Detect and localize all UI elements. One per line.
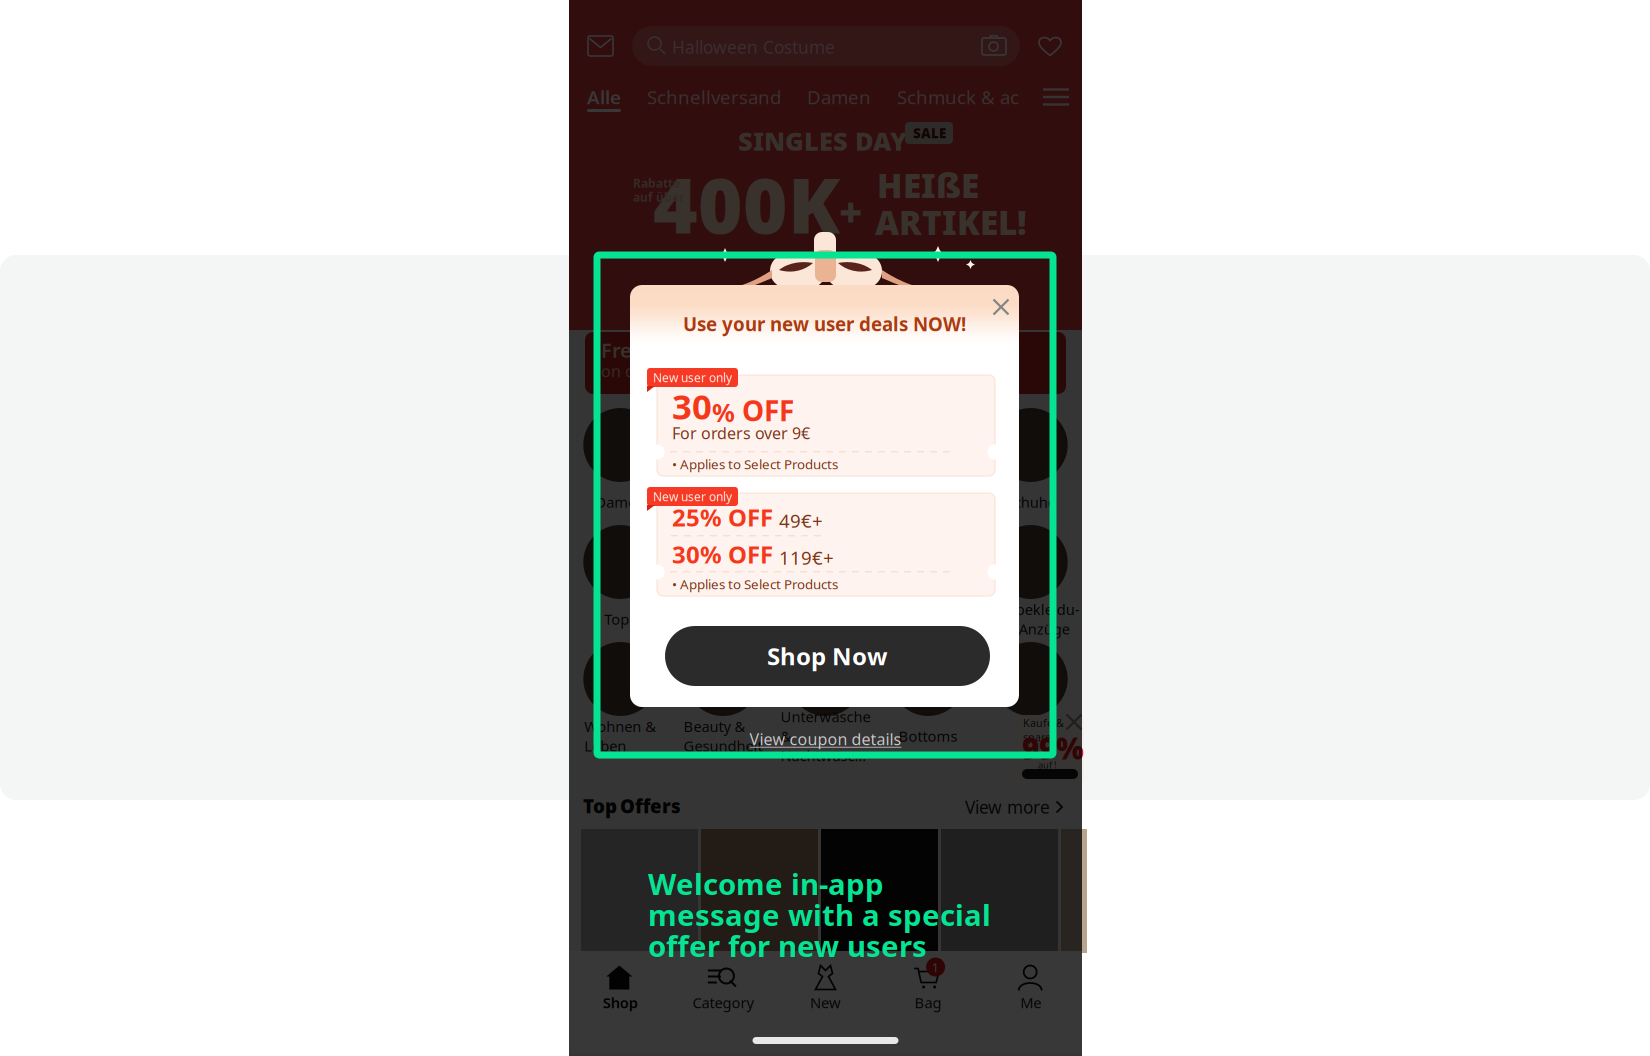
staticText: Oberbekleidung & Anzüge bbox=[982, 599, 1080, 638]
button[interactable]: View coupon details bbox=[569, 727, 1082, 751]
button[interactable]: Messages bbox=[588, 36, 613, 56]
staticText: 119€+ bbox=[779, 545, 834, 570]
staticText: New user only bbox=[653, 488, 732, 504]
staticText: HEIßE bbox=[877, 163, 979, 207]
button[interactable]: Kurven & Plus bbox=[672, 408, 774, 525]
staticText: Unterwäsche & Nachtwäsc… bbox=[780, 707, 870, 765]
button[interactable]: Oberbekleidung & Anzüge bbox=[979, 525, 1082, 642]
staticText: View more bbox=[965, 795, 1050, 818]
staticText: Rabatte bbox=[633, 175, 680, 191]
button[interactable]: Dismiss promo bbox=[1068, 716, 1080, 728]
staticText: Schuhe bbox=[1006, 492, 1056, 512]
staticText: Shop bbox=[603, 993, 638, 1012]
button[interactable]: Sets bbox=[774, 525, 877, 642]
staticText: 30% OFF bbox=[672, 538, 773, 570]
staticText: Schnellversand bbox=[647, 85, 781, 109]
staticText: on orders 0€+ bbox=[601, 360, 706, 382]
staticText: Welcome in-app bbox=[648, 864, 884, 903]
button[interactable]: Wishlist bbox=[1038, 35, 1062, 56]
staticText: Bottoms bbox=[899, 726, 958, 746]
staticText: Offers bbox=[620, 794, 681, 818]
staticText: 25% OFF bbox=[672, 501, 773, 533]
staticText: Category bbox=[692, 993, 753, 1012]
staticText: Wohnen & Leben bbox=[584, 716, 656, 755]
staticText: New bbox=[810, 993, 841, 1012]
button[interactable]: Close bbox=[982, 288, 1020, 326]
staticText: 1 bbox=[932, 958, 940, 976]
button[interactable]: Tops bbox=[569, 525, 672, 642]
staticText: New user only bbox=[653, 369, 732, 385]
staticText: Sale bbox=[1017, 726, 1045, 746]
button[interactable]: New bbox=[774, 951, 877, 1023]
staticText: • Applies to Select Products bbox=[672, 455, 838, 473]
staticText: Sets bbox=[811, 609, 839, 629]
staticText: Alle bbox=[587, 85, 621, 109]
button[interactable]: Unterteile bbox=[877, 525, 979, 642]
staticText: • Applies to Select Products bbox=[672, 575, 838, 593]
button[interactable]: Sale bbox=[979, 642, 1082, 759]
staticText: SALE bbox=[913, 124, 946, 142]
staticText: Shop Now bbox=[767, 640, 888, 672]
staticText: Tops bbox=[604, 609, 636, 629]
button[interactable]: Beauty & Gesundheit bbox=[672, 642, 774, 759]
staticText: Halloween Costume bbox=[672, 35, 835, 58]
staticText: Use your new user deals NOW! bbox=[683, 312, 966, 336]
button[interactable]: Kleider bbox=[672, 525, 774, 642]
staticText: Bag bbox=[915, 993, 942, 1012]
button[interactable]: View more bbox=[965, 796, 1064, 818]
staticText: Kinder bbox=[803, 492, 848, 512]
staticText: Kaufe & spare bbox=[1023, 716, 1064, 744]
staticText: Beauty & Gesundheit bbox=[683, 716, 762, 755]
button[interactable]: Schuhe bbox=[979, 408, 1082, 525]
button[interactable]: Unterwäsche & Nachtwäsc… bbox=[774, 642, 877, 759]
staticText: Herren bbox=[904, 492, 952, 512]
staticText: auf ! bbox=[1038, 759, 1057, 771]
button[interactable]: 1 bbox=[877, 951, 979, 1023]
staticText: Kurven & Plus bbox=[675, 492, 771, 512]
staticText: Kleider bbox=[699, 609, 747, 629]
staticText: 49€+ bbox=[779, 508, 823, 533]
staticText: OFF bbox=[735, 392, 794, 429]
button[interactable]: Damen bbox=[569, 408, 672, 525]
staticText: 400K bbox=[653, 153, 840, 254]
staticText: offer for new users bbox=[648, 926, 927, 965]
staticText: View coupon details bbox=[749, 728, 901, 750]
staticText: Damen bbox=[595, 492, 645, 512]
button[interactable]: Kinder bbox=[774, 408, 877, 525]
staticText: auf über bbox=[633, 189, 684, 205]
staticText: Free shipping bbox=[601, 337, 736, 363]
button[interactable]: Wohnen & Leben bbox=[569, 642, 672, 759]
staticText: 99% bbox=[1022, 728, 1084, 767]
staticText: + bbox=[839, 185, 862, 238]
staticText: Top bbox=[583, 794, 617, 818]
button[interactable]: Me bbox=[979, 951, 1082, 1023]
staticText: Unterteile bbox=[894, 609, 962, 629]
button[interactable]: Shop bbox=[569, 951, 672, 1023]
staticText: ARTIKEL! bbox=[875, 200, 1027, 244]
staticText: For orders over 9€ bbox=[672, 422, 810, 444]
button[interactable]: Shop Now bbox=[665, 626, 990, 686]
staticText: message with a special bbox=[648, 895, 991, 934]
staticText: Me bbox=[1020, 993, 1041, 1012]
button[interactable]: Bottoms bbox=[877, 642, 979, 759]
staticText: Schmuck & ac bbox=[897, 85, 1019, 109]
staticText: Damen bbox=[807, 85, 871, 109]
staticText: SINGLES DAY bbox=[738, 124, 907, 158]
button[interactable]: Search by image bbox=[982, 35, 1006, 55]
button[interactable]: Category bbox=[672, 951, 774, 1023]
staticText: % bbox=[712, 395, 735, 429]
staticText: 30 bbox=[672, 383, 712, 429]
button[interactable]: Herren bbox=[877, 408, 979, 525]
